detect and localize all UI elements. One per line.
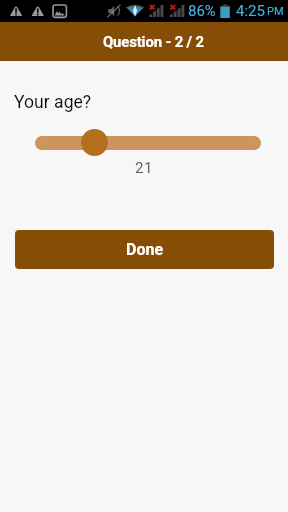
staticText: 21 bbox=[0, 159, 288, 177]
button[interactable]: Age slider bbox=[35, 136, 261, 150]
staticText: Question - 2 / 2 bbox=[103, 33, 204, 50]
button[interactable]: Done bbox=[15, 230, 274, 269]
staticText: Done bbox=[126, 240, 164, 259]
staticText: PM bbox=[267, 5, 284, 18]
staticText: Your age? bbox=[14, 92, 92, 113]
staticText: 86% bbox=[188, 2, 216, 20]
staticText: 4:25 bbox=[236, 2, 265, 20]
button[interactable] bbox=[81, 129, 108, 156]
